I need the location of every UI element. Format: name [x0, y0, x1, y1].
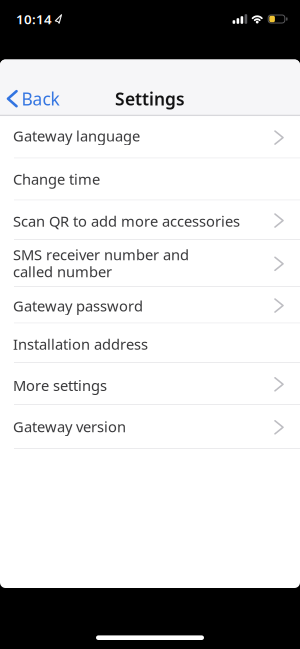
button[interactable]: More settings	[0, 363, 300, 405]
button[interactable]: SMS receiver number and	[0, 240, 300, 287]
staticText: 10:14	[16, 10, 52, 28]
staticText: Settings	[115, 87, 185, 110]
button[interactable]: Gateway password	[0, 287, 300, 323]
staticText: Gateway password	[13, 296, 143, 315]
staticText: Gateway language	[13, 126, 140, 146]
button[interactable]: Scan QR to add more accessories	[0, 200, 300, 240]
staticText: SMS receiver number and	[13, 245, 189, 264]
staticText: Scan QR to add more accessories	[13, 211, 240, 231]
staticText: Installation address	[13, 334, 148, 354]
staticText: Gateway version	[13, 417, 126, 436]
button[interactable]: Gateway version	[0, 405, 300, 449]
button[interactable]: Gateway language	[0, 116, 300, 158]
staticText: More settings	[13, 376, 107, 395]
button[interactable]: Change time	[0, 158, 300, 200]
staticText: called number	[13, 262, 112, 281]
staticText: Change time	[13, 169, 100, 189]
button[interactable]: Installation address	[0, 323, 300, 363]
button[interactable]: Back	[0, 87, 59, 110]
staticText: Back	[21, 87, 59, 110]
